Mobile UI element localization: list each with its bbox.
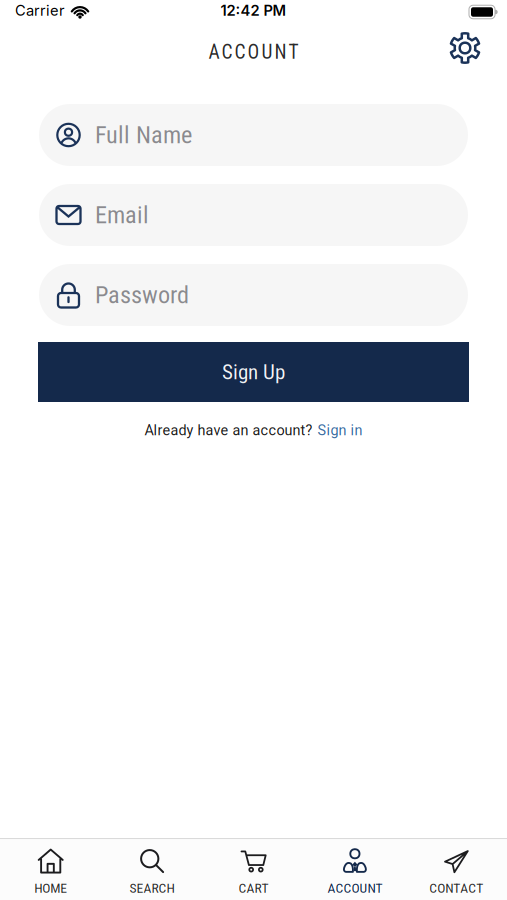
staticText: Email [95, 201, 149, 229]
staticText: HOME [34, 880, 67, 896]
staticText: Full Name [95, 121, 192, 149]
staticText: SEARCH [130, 880, 175, 896]
staticText: Sign Up [222, 360, 285, 384]
staticText: CONTACT [429, 880, 483, 896]
staticText: 12:42 PM [220, 2, 286, 19]
staticText: Password [95, 281, 189, 309]
staticText: Already have an account? [144, 422, 312, 439]
staticText: Carrier [15, 2, 65, 19]
staticText: A C C O U N T [208, 41, 298, 63]
staticText: Sign in [317, 422, 362, 439]
staticText: ACCOUNT [327, 880, 382, 896]
staticText: CART [238, 880, 268, 896]
